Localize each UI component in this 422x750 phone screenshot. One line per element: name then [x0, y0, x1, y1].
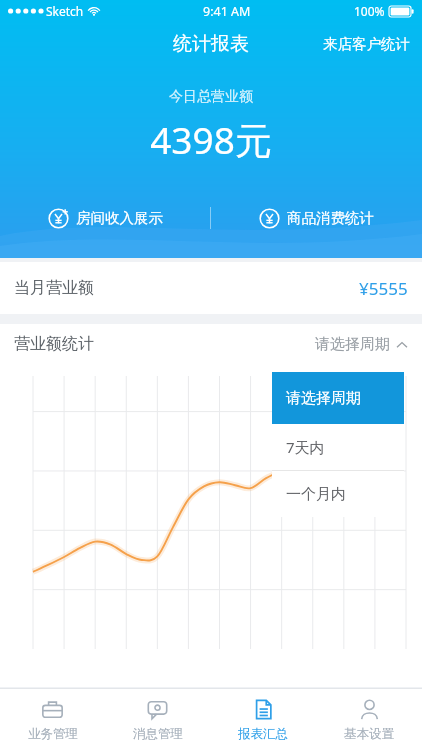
- button[interactable]: 来店客户统计: [311, 27, 422, 61]
- staticText: Sketch: [46, 3, 84, 19]
- button[interactable]: 商品消费统计: [211, 206, 422, 230]
- staticText: 9:41 AM: [203, 3, 251, 20]
- button[interactable]: 一个月内: [272, 471, 404, 517]
- button[interactable]: 当月营业额: [0, 262, 422, 314]
- button[interactable]: 业务管理: [0, 689, 105, 750]
- staticText: 营业额统计: [14, 334, 94, 354]
- staticText: 商品消费统计: [287, 209, 374, 227]
- staticText: 4398元: [0, 114, 422, 165]
- button[interactable]: 7天内: [272, 424, 404, 470]
- staticText: 统计报表: [173, 32, 249, 56]
- staticText: 7天内: [286, 437, 325, 457]
- staticText: 请选择周期: [315, 335, 390, 354]
- staticText: 业务管理: [28, 726, 78, 742]
- button[interactable]: 基本设置: [316, 689, 422, 750]
- staticText: 当月营业额: [14, 278, 94, 298]
- staticText: 今日总营业额: [0, 88, 422, 106]
- staticText: 基本设置: [344, 726, 394, 742]
- button[interactable]: 消息管理: [105, 689, 210, 750]
- button[interactable]: 请选择周期: [272, 372, 404, 424]
- staticText: 来店客户统计: [323, 35, 410, 53]
- staticText: 请选择周期: [286, 389, 361, 408]
- staticText: 消息管理: [133, 726, 183, 742]
- staticText: 100%: [354, 3, 385, 19]
- staticText: ¥5555: [359, 277, 408, 300]
- button[interactable]: 房间收入展示: [0, 206, 210, 230]
- button[interactable]: 报表汇总: [210, 689, 316, 750]
- staticText: 报表汇总: [238, 726, 288, 742]
- button[interactable]: 请选择周期: [315, 335, 408, 354]
- staticText: 房间收入展示: [76, 209, 163, 227]
- staticText: 一个月内: [286, 485, 346, 504]
